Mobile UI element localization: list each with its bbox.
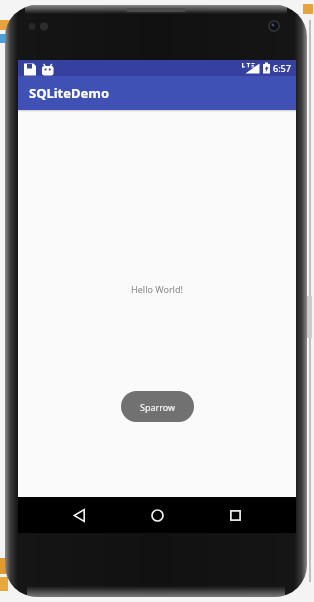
button[interactable]: Sparrow <box>121 391 194 422</box>
staticText: SQLiteDemo <box>29 84 110 102</box>
staticText: Hello World! <box>18 283 296 295</box>
staticText: 6:57 <box>273 62 291 74</box>
button[interactable]: Back <box>62 498 96 532</box>
button[interactable]: Recent apps <box>218 498 252 532</box>
staticText: Sparrow <box>140 401 176 413</box>
button[interactable]: Home <box>140 498 174 532</box>
